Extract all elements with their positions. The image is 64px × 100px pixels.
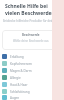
button[interactable]: Augen <box>0 95 64 100</box>
button[interactable]: Magen & Darm <box>0 67 64 74</box>
staticText: Entdecke hilfreiche Produkte für deine B… <box>3 19 59 23</box>
button[interactable]: Erkältung <box>0 53 64 60</box>
staticText: Magen & Darm <box>10 69 32 73</box>
staticText: Schnelle Hilfe bei vielen Beschwerden <box>5 3 64 17</box>
button[interactable]: Kopfschmerzen <box>0 60 64 67</box>
button[interactable]: Allergie <box>0 74 64 81</box>
staticText: Wähle deine Beschwerde aus <box>13 39 49 43</box>
staticText: Augen <box>10 96 20 100</box>
staticText: Beschwerde <box>22 33 40 37</box>
staticText: Schlafstörung <box>10 90 30 94</box>
staticText: Erkältung <box>10 55 24 59</box>
button[interactable]: Beschwerde <box>2 30 60 50</box>
staticText: Haut & Haar <box>10 83 28 87</box>
staticText: Allergie <box>10 76 21 80</box>
staticText: Kopfschmerzen <box>10 62 32 66</box>
button[interactable]: Schlafstörung <box>0 88 64 95</box>
button[interactable]: Haut & Haar <box>0 81 64 88</box>
